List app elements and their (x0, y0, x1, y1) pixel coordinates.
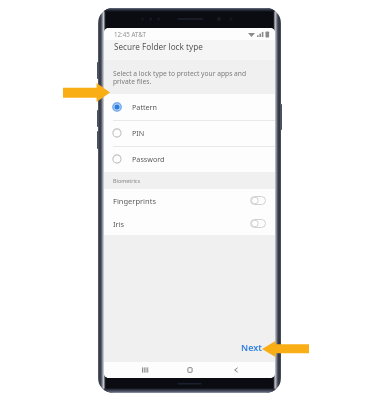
staticText: Pattern (132, 102, 158, 112)
staticText: Next (241, 341, 262, 353)
button[interactable]: Iris (104, 212, 275, 235)
button[interactable]: PIN (104, 120, 275, 146)
button[interactable]: Recents (132, 362, 158, 378)
button[interactable]: Back (223, 362, 249, 378)
staticText: Password (132, 154, 165, 164)
button[interactable]: Pattern (104, 94, 275, 120)
button[interactable]: Fingerprints (104, 189, 275, 212)
button[interactable]: Next (238, 338, 265, 356)
button[interactable]: Home (177, 362, 203, 378)
staticText: Fingerprints (113, 196, 156, 206)
staticText: Select a lock type to protect your apps … (113, 69, 257, 86)
staticText: Secure Folder lock type (114, 41, 203, 52)
staticText: Iris (113, 219, 125, 229)
staticText: PIN (132, 128, 145, 138)
button[interactable]: Password (104, 146, 275, 172)
staticText: Biometrics (113, 177, 140, 184)
staticText: 12:45 AT&T (114, 30, 146, 38)
